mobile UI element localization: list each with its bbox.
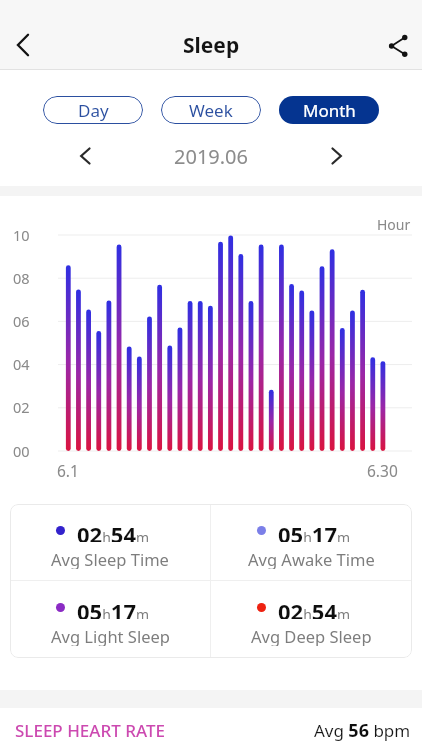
staticText: 08 [13, 268, 30, 288]
button[interactable]: Next month [318, 138, 354, 174]
button[interactable]: 05h17m [211, 504, 412, 580]
staticText: Avg Light Sleep [51, 625, 170, 646]
staticText: 6.1 [57, 460, 79, 481]
button[interactable]: Share [376, 20, 422, 70]
staticText: Sleep [183, 31, 240, 60]
staticText: Day [78, 99, 109, 122]
staticText: 06 [13, 311, 30, 331]
staticText: 6.30 [367, 460, 398, 481]
staticText: Avg 56 bpm [314, 718, 411, 743]
staticText: 02h54m [77, 519, 150, 542]
staticText: SLEEP HEART RATE [15, 719, 165, 742]
staticText: Month [303, 99, 356, 122]
staticText: 2019.06 [174, 143, 248, 170]
button[interactable]: Back [0, 20, 46, 70]
staticText: 04 [13, 354, 30, 374]
staticText: Avg Awake Time [248, 548, 375, 569]
staticText: Week [189, 99, 233, 122]
button[interactable]: 05h17m [10, 581, 210, 658]
button[interactable]: 02h54m [10, 504, 210, 580]
staticText: 10 [13, 225, 30, 245]
staticText: 02h54m [278, 596, 351, 619]
staticText: Avg Sleep Time [51, 548, 169, 569]
button[interactable]: Week [161, 96, 261, 124]
button[interactable]: Day [43, 96, 143, 124]
staticText: 00 [13, 441, 30, 461]
staticText: Hour [377, 215, 411, 234]
button[interactable]: 02h54m [211, 581, 412, 658]
button[interactable]: Month [279, 96, 379, 124]
staticText: 05h17m [77, 596, 150, 619]
staticText: 05h17m [278, 519, 351, 542]
button[interactable]: Previous month [68, 138, 104, 174]
staticText: Avg Deep Sleep [251, 625, 372, 646]
staticText: 02 [13, 397, 30, 417]
